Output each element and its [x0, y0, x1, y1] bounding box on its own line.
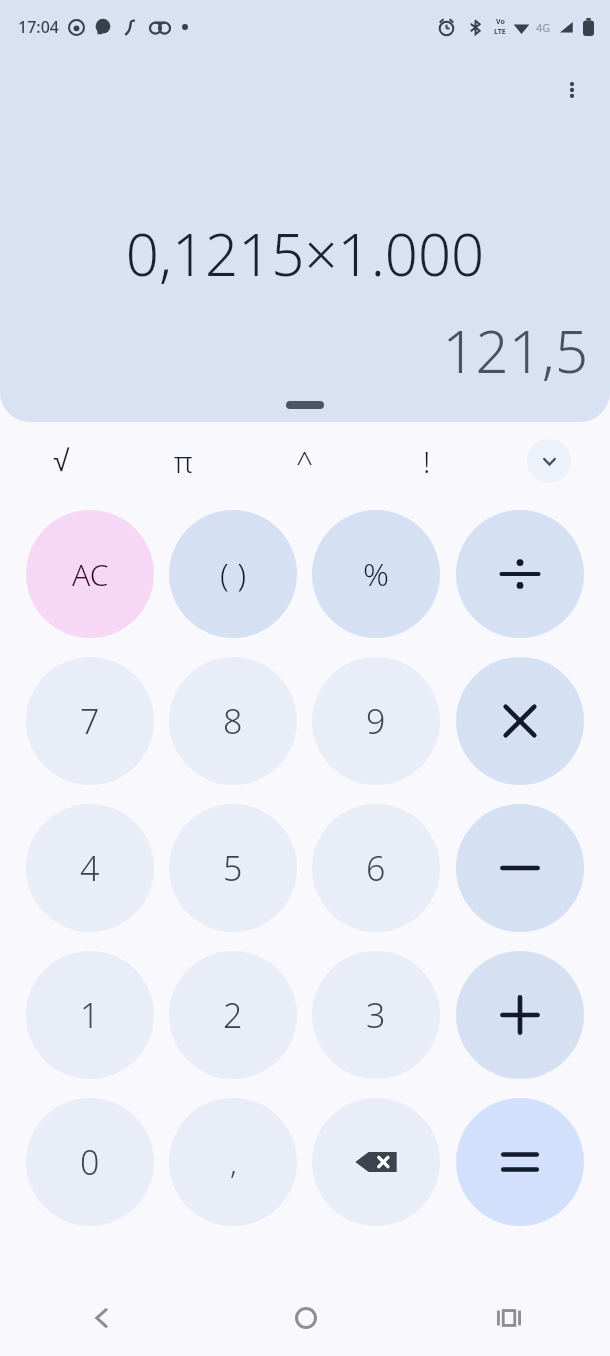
- staticText: 4: [80, 845, 100, 891]
- staticText: √: [53, 444, 70, 478]
- button[interactable]: ,: [169, 1098, 297, 1226]
- button[interactable]: %: [312, 510, 440, 638]
- staticText: 0: [80, 1139, 100, 1185]
- button[interactable]: Home: [204, 1280, 407, 1356]
- button[interactable]: 0: [26, 1098, 154, 1226]
- staticText: 1: [80, 992, 100, 1038]
- button[interactable]: Multiply: [456, 657, 584, 785]
- staticText: !: [423, 441, 431, 482]
- staticText: 3: [366, 992, 386, 1038]
- staticText: %: [363, 552, 389, 596]
- button[interactable]: AC: [26, 510, 154, 638]
- staticText: 0,1215×1.000: [22, 214, 588, 293]
- button[interactable]: Square root: [0, 422, 122, 500]
- staticText: 121,5: [22, 311, 588, 390]
- staticText: LTE: [494, 27, 506, 37]
- button[interactable]: Divide: [456, 510, 584, 638]
- staticText: 8: [223, 698, 243, 744]
- button[interactable]: Pi: [122, 422, 244, 500]
- button[interactable]: Subtract: [456, 804, 584, 932]
- button[interactable]: Add: [456, 951, 584, 1079]
- staticText: π: [174, 441, 193, 482]
- staticText: 4G: [536, 20, 551, 35]
- button[interactable]: 9: [312, 657, 440, 785]
- button[interactable]: More options: [544, 62, 600, 118]
- staticText: ^: [296, 441, 314, 482]
- button[interactable]: 3: [312, 951, 440, 1079]
- button[interactable]: Delete: [312, 1098, 440, 1226]
- button[interactable]: 4: [26, 804, 154, 932]
- button[interactable]: Expand: [527, 439, 571, 483]
- staticText: ,: [230, 1142, 237, 1183]
- button[interactable]: 7: [26, 657, 154, 785]
- button[interactable]: 5: [169, 804, 297, 932]
- button[interactable]: ( ): [169, 510, 297, 638]
- button[interactable]: Recents: [407, 1280, 610, 1356]
- staticText: 17:04: [18, 16, 59, 38]
- staticText: 7: [80, 698, 100, 744]
- button[interactable]: 1: [26, 951, 154, 1079]
- button[interactable]: Equals: [456, 1098, 584, 1226]
- staticText: 9: [366, 698, 386, 744]
- staticText: Vo: [496, 17, 505, 27]
- button[interactable]: 2: [169, 951, 297, 1079]
- button[interactable]: 6: [312, 804, 440, 932]
- button[interactable]: 8: [169, 657, 297, 785]
- staticText: 6: [366, 845, 386, 891]
- button[interactable]: Power: [244, 422, 366, 500]
- staticText: 2: [223, 992, 243, 1038]
- staticText: 5: [223, 845, 243, 891]
- staticText: AC: [72, 554, 109, 595]
- button[interactable]: Back: [0, 1280, 204, 1356]
- staticText: ( ): [220, 552, 247, 596]
- button[interactable]: Factorial: [366, 422, 488, 500]
